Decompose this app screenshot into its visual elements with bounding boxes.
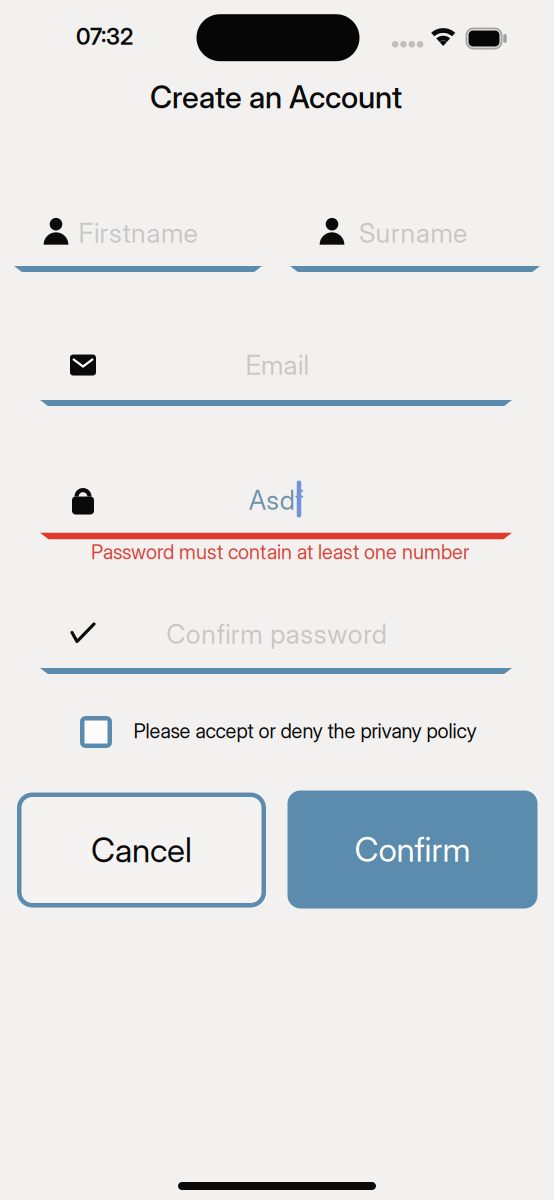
staticText: 07:32 (76, 23, 133, 50)
button[interactable]: Cancel (17, 792, 266, 907)
button[interactable]: Surname (290, 206, 540, 278)
staticText: Firstname (78, 217, 197, 249)
staticText: Asdf (249, 484, 303, 516)
staticText: Email (245, 349, 308, 381)
button[interactable]: Confirm (287, 790, 537, 908)
staticText: Password must contain at least one numbe… (91, 540, 469, 564)
staticText: Create an Account (150, 79, 402, 115)
staticText: Please accept or deny the privany policy (133, 719, 476, 743)
button[interactable]: Asdf (40, 461, 512, 545)
staticText: Cancel (91, 830, 192, 870)
button[interactable]: Email (40, 328, 512, 412)
button[interactable]: Accept privacy policy (79, 712, 479, 752)
staticText: Confirm password (166, 618, 387, 650)
staticText: Confirm (354, 830, 470, 869)
button[interactable]: Confirm password (40, 596, 512, 680)
button[interactable]: Firstname (14, 206, 262, 278)
staticText: Surname (359, 217, 467, 249)
